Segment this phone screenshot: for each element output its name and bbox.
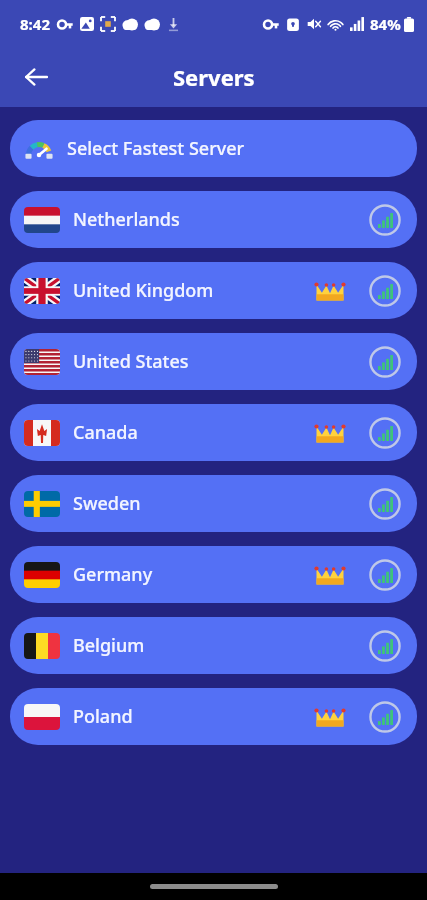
button[interactable]: United Kingdom bbox=[10, 262, 417, 319]
staticText: Poland bbox=[73, 704, 133, 729]
button[interactable]: Belgium bbox=[10, 617, 417, 674]
button[interactable]: Poland bbox=[10, 688, 417, 745]
staticText: Belgium bbox=[73, 633, 145, 658]
staticText: 84% bbox=[370, 14, 401, 34]
button[interactable]: Select Fastest Server bbox=[10, 120, 417, 177]
staticText: Germany bbox=[73, 562, 153, 587]
staticText: Servers bbox=[173, 62, 255, 92]
staticText: Netherlands bbox=[73, 207, 180, 232]
button[interactable]: Canada bbox=[10, 404, 417, 461]
button[interactable]: Sweden bbox=[10, 475, 417, 532]
staticText: United Kingdom bbox=[73, 278, 214, 303]
staticText: Canada bbox=[73, 420, 138, 445]
button[interactable]: Netherlands bbox=[10, 191, 417, 248]
staticText: Select Fastest Server bbox=[67, 136, 245, 161]
button[interactable]: Back bbox=[12, 53, 60, 101]
button[interactable]: Germany bbox=[10, 546, 417, 603]
staticText: Sweden bbox=[73, 491, 141, 516]
staticText: 8:42 bbox=[20, 14, 50, 34]
button[interactable]: United States bbox=[10, 333, 417, 390]
staticText: United States bbox=[73, 349, 189, 374]
